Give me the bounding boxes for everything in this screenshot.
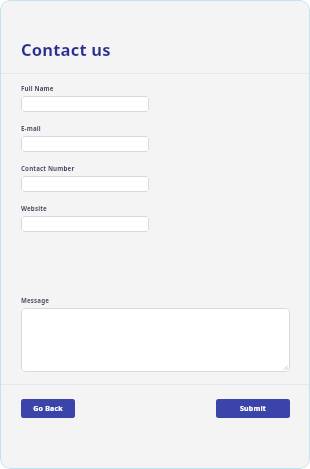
button[interactable]: Go Back [21, 399, 75, 418]
staticText: Full Name [21, 84, 54, 92]
staticText: Contact us [21, 38, 111, 60]
button[interactable] [21, 176, 149, 192]
staticText: Submit [240, 404, 266, 414]
button[interactable] [21, 96, 149, 112]
button[interactable] [21, 216, 149, 232]
staticText: Go Back [33, 404, 63, 414]
button[interactable] [21, 136, 149, 152]
staticText: Website [21, 204, 47, 212]
staticText: E-mail [21, 124, 41, 132]
staticText: Contact Number [21, 164, 75, 172]
staticText: Message [21, 296, 50, 304]
button[interactable]: Submit [216, 399, 290, 418]
button[interactable] [21, 308, 290, 372]
